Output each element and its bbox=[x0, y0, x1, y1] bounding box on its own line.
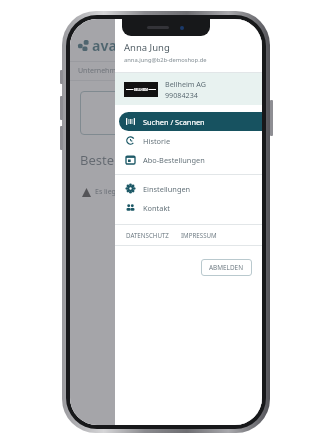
staticText: Suchen bbox=[150, 107, 182, 119]
staticText: Abo-Bestellungen bbox=[143, 155, 205, 165]
staticText: 99084234 bbox=[165, 90, 198, 100]
button[interactable]: Kontakt bbox=[115, 198, 262, 217]
button[interactable]: DATENSCHUTZ bbox=[126, 231, 169, 239]
staticText: BELLHEIM bbox=[134, 88, 148, 92]
staticText: Kontakt bbox=[143, 203, 171, 213]
staticText: Einstellungen bbox=[143, 184, 191, 194]
staticText: Bestellungen bbox=[80, 151, 161, 169]
staticText: ABMELDEN bbox=[209, 263, 244, 272]
staticText: IMPRESSUM bbox=[181, 231, 217, 239]
button[interactable]: Suchen / Scannen bbox=[119, 112, 262, 131]
staticText: Suchen / Scannen bbox=[143, 117, 205, 127]
staticText: Anna Jung bbox=[124, 41, 170, 54]
staticText: Unternehmen bbox=[78, 66, 125, 76]
button[interactable]: Historie bbox=[115, 131, 262, 150]
button[interactable]: IMPRESSUM bbox=[181, 231, 217, 239]
button[interactable]: Einstellungen bbox=[115, 179, 262, 198]
button[interactable]: ABMELDEN bbox=[201, 259, 252, 276]
button[interactable]: BELLHEIM bbox=[115, 73, 262, 105]
staticText: Es liegen bbox=[95, 187, 125, 197]
staticText: Historie bbox=[143, 136, 171, 146]
staticText: DATENSCHUTZ bbox=[126, 231, 169, 239]
staticText: ava bbox=[92, 36, 117, 55]
staticText: anna.jung@b2b-demoshop.de bbox=[124, 56, 207, 64]
staticText: Bellheim AG bbox=[165, 79, 207, 89]
button[interactable]: Abo-Bestellungen bbox=[115, 150, 262, 169]
